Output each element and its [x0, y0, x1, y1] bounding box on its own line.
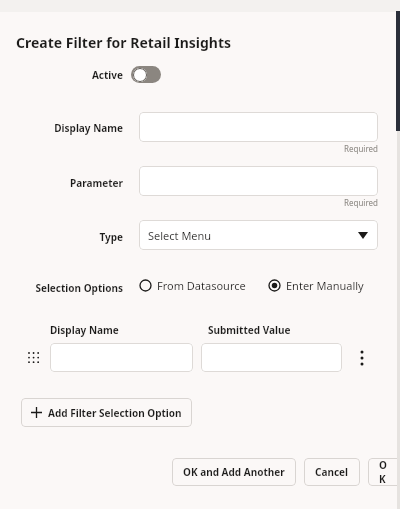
staticText: Type [0, 230, 123, 244]
staticText: Select Menu [148, 228, 212, 243]
staticText: Active [0, 68, 123, 82]
staticText: From Datasource [157, 278, 246, 293]
staticText: Add Filter Selection Option [48, 406, 182, 420]
button[interactable]: Active toggle [131, 66, 161, 83]
staticText: Display Name [50, 323, 119, 337]
staticText: OK [379, 458, 391, 486]
staticText: Parameter [0, 176, 123, 190]
button[interactable]: Add Filter Selection Option [21, 398, 192, 427]
button[interactable]: More options [352, 345, 372, 371]
button[interactable]: OK [368, 458, 400, 486]
button[interactable] [201, 343, 342, 372]
staticText: Enter Manually [286, 278, 364, 293]
button[interactable]: Cancel [304, 458, 360, 486]
staticText: Required [139, 143, 378, 154]
staticText: Display Name [0, 121, 123, 135]
staticText: Create Filter for Retail Insights [16, 33, 232, 52]
button[interactable] [139, 166, 378, 196]
button[interactable] [139, 112, 378, 142]
button[interactable]: Enter Manually [267, 276, 365, 295]
button[interactable]: From Datasource [138, 276, 247, 295]
button[interactable] [50, 343, 193, 372]
staticText: Cancel [315, 465, 349, 479]
staticText: Selection Options [0, 281, 123, 295]
staticText: OK and Add Another [183, 465, 285, 479]
button[interactable]: Reorder [24, 348, 42, 366]
staticText: Submitted Value [208, 323, 291, 337]
button[interactable]: OK and Add Another [172, 458, 296, 486]
button[interactable]: Select Menu [139, 220, 378, 250]
staticText: Required [139, 197, 378, 208]
